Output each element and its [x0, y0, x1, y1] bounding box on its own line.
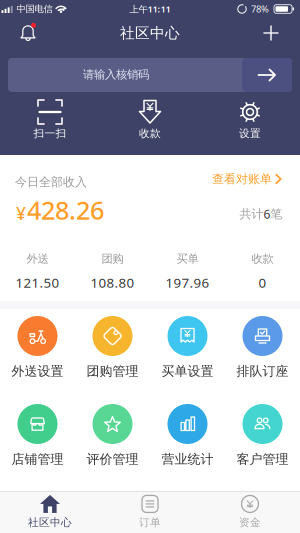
- button[interactable]: 扫一扫: [10, 99, 90, 146]
- staticText: 今日全部收入: [15, 175, 87, 189]
- button[interactable]: 外送设置: [0, 316, 75, 388]
- staticText: 外送: [26, 251, 48, 266]
- button[interactable]: 订单: [100, 491, 200, 532]
- staticText: 团购: [101, 251, 123, 266]
- staticText: 收款: [251, 251, 273, 266]
- staticText: 客户管理: [236, 451, 288, 467]
- staticText: 外送设置: [11, 363, 63, 379]
- staticText: 订单: [139, 516, 161, 529]
- staticText: 查看对账单: [212, 172, 272, 186]
- staticText: 资金: [239, 516, 261, 529]
- staticText: 中国电信: [16, 3, 52, 15]
- staticText: 428.26: [27, 193, 104, 227]
- staticText: 扫一扫: [33, 127, 66, 140]
- button[interactable]: 客户管理: [225, 404, 300, 476]
- staticText: 店铺管理: [11, 451, 63, 467]
- button[interactable]: 收款: [110, 99, 190, 146]
- button[interactable]: 店铺管理: [0, 404, 75, 476]
- staticText: 笔: [270, 207, 282, 221]
- staticText: ¥: [16, 202, 26, 225]
- button[interactable]: Submit code: [242, 58, 292, 92]
- button[interactable]: 排队订座: [225, 316, 300, 388]
- staticText: 197.96: [165, 274, 209, 291]
- staticText: 排队订座: [236, 363, 288, 379]
- staticText: 108.80: [90, 274, 134, 291]
- staticText: 评价管理: [86, 451, 138, 467]
- button[interactable]: Add: [263, 25, 279, 41]
- staticText: 买单设置: [161, 363, 213, 379]
- button[interactable]: 团购管理: [75, 316, 150, 388]
- staticText: 营业统计: [161, 451, 213, 467]
- button[interactable]: 查看对账单: [212, 172, 282, 186]
- staticText: 上午11:11: [129, 3, 170, 15]
- button[interactable]: 评价管理: [75, 404, 150, 476]
- staticText: 社区中心: [120, 24, 180, 42]
- staticText: 买单: [176, 251, 198, 266]
- staticText: 共计: [239, 207, 263, 221]
- staticText: 0: [258, 274, 266, 291]
- button[interactable]: Notifications: [17, 22, 39, 44]
- button[interactable]: 设置: [210, 99, 290, 146]
- staticText: 团购管理: [86, 363, 138, 379]
- staticText: 设置: [239, 127, 261, 140]
- button[interactable]: 营业统计: [150, 404, 225, 476]
- staticText: 社区中心: [28, 516, 72, 529]
- staticText: 6: [263, 206, 270, 222]
- staticText: 78%: [251, 3, 269, 15]
- button[interactable]: 资金: [200, 491, 300, 532]
- button[interactable]: 社区中心: [0, 491, 100, 532]
- staticText: 请输入核销码: [83, 67, 149, 82]
- staticText: 收款: [139, 127, 161, 140]
- staticText: 121.50: [15, 274, 59, 291]
- button[interactable]: 买单设置: [150, 316, 225, 388]
